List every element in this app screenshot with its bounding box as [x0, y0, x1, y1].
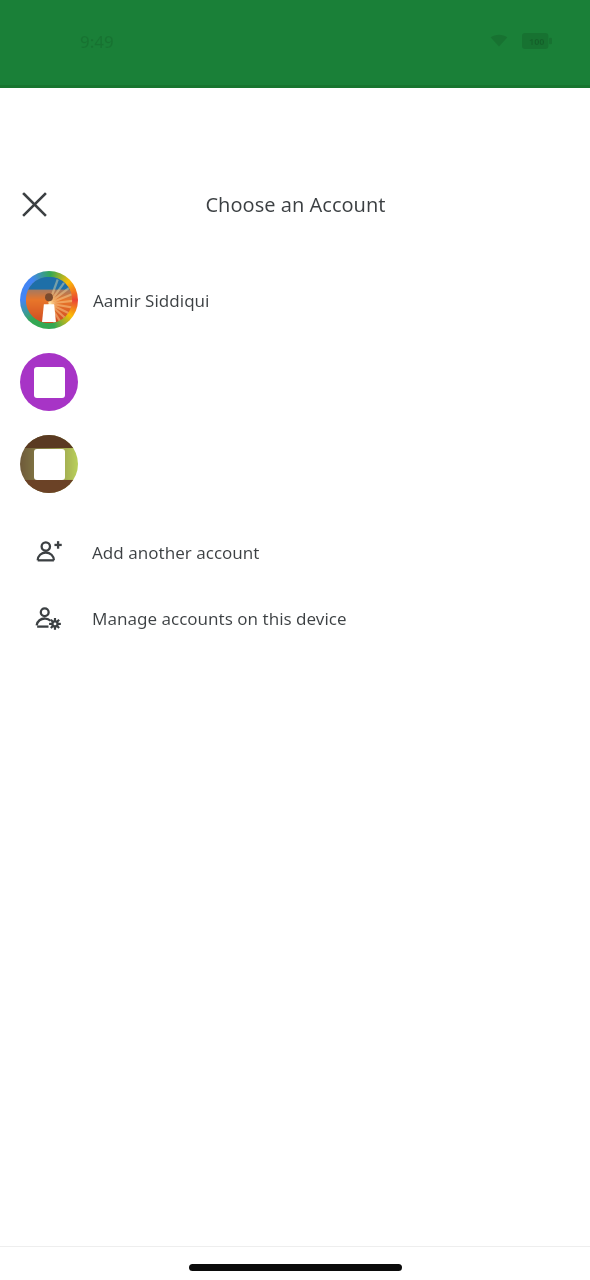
staticText: Choose an Account	[205, 191, 386, 218]
button[interactable]: Close	[12, 182, 56, 226]
button[interactable]: Manage accounts on this device	[0, 585, 590, 651]
button[interactable]	[0, 435, 590, 493]
staticText: 9:49	[80, 30, 114, 53]
button[interactable]	[0, 353, 590, 411]
staticText: Aamir Siddiqui	[93, 289, 210, 312]
button[interactable]: Add another account	[0, 519, 590, 585]
staticText: Manage accounts on this device	[92, 607, 347, 630]
staticText: 100	[529, 35, 545, 47]
button[interactable]: Aamir Siddiqui	[0, 271, 590, 329]
staticText: Add another account	[92, 541, 260, 564]
